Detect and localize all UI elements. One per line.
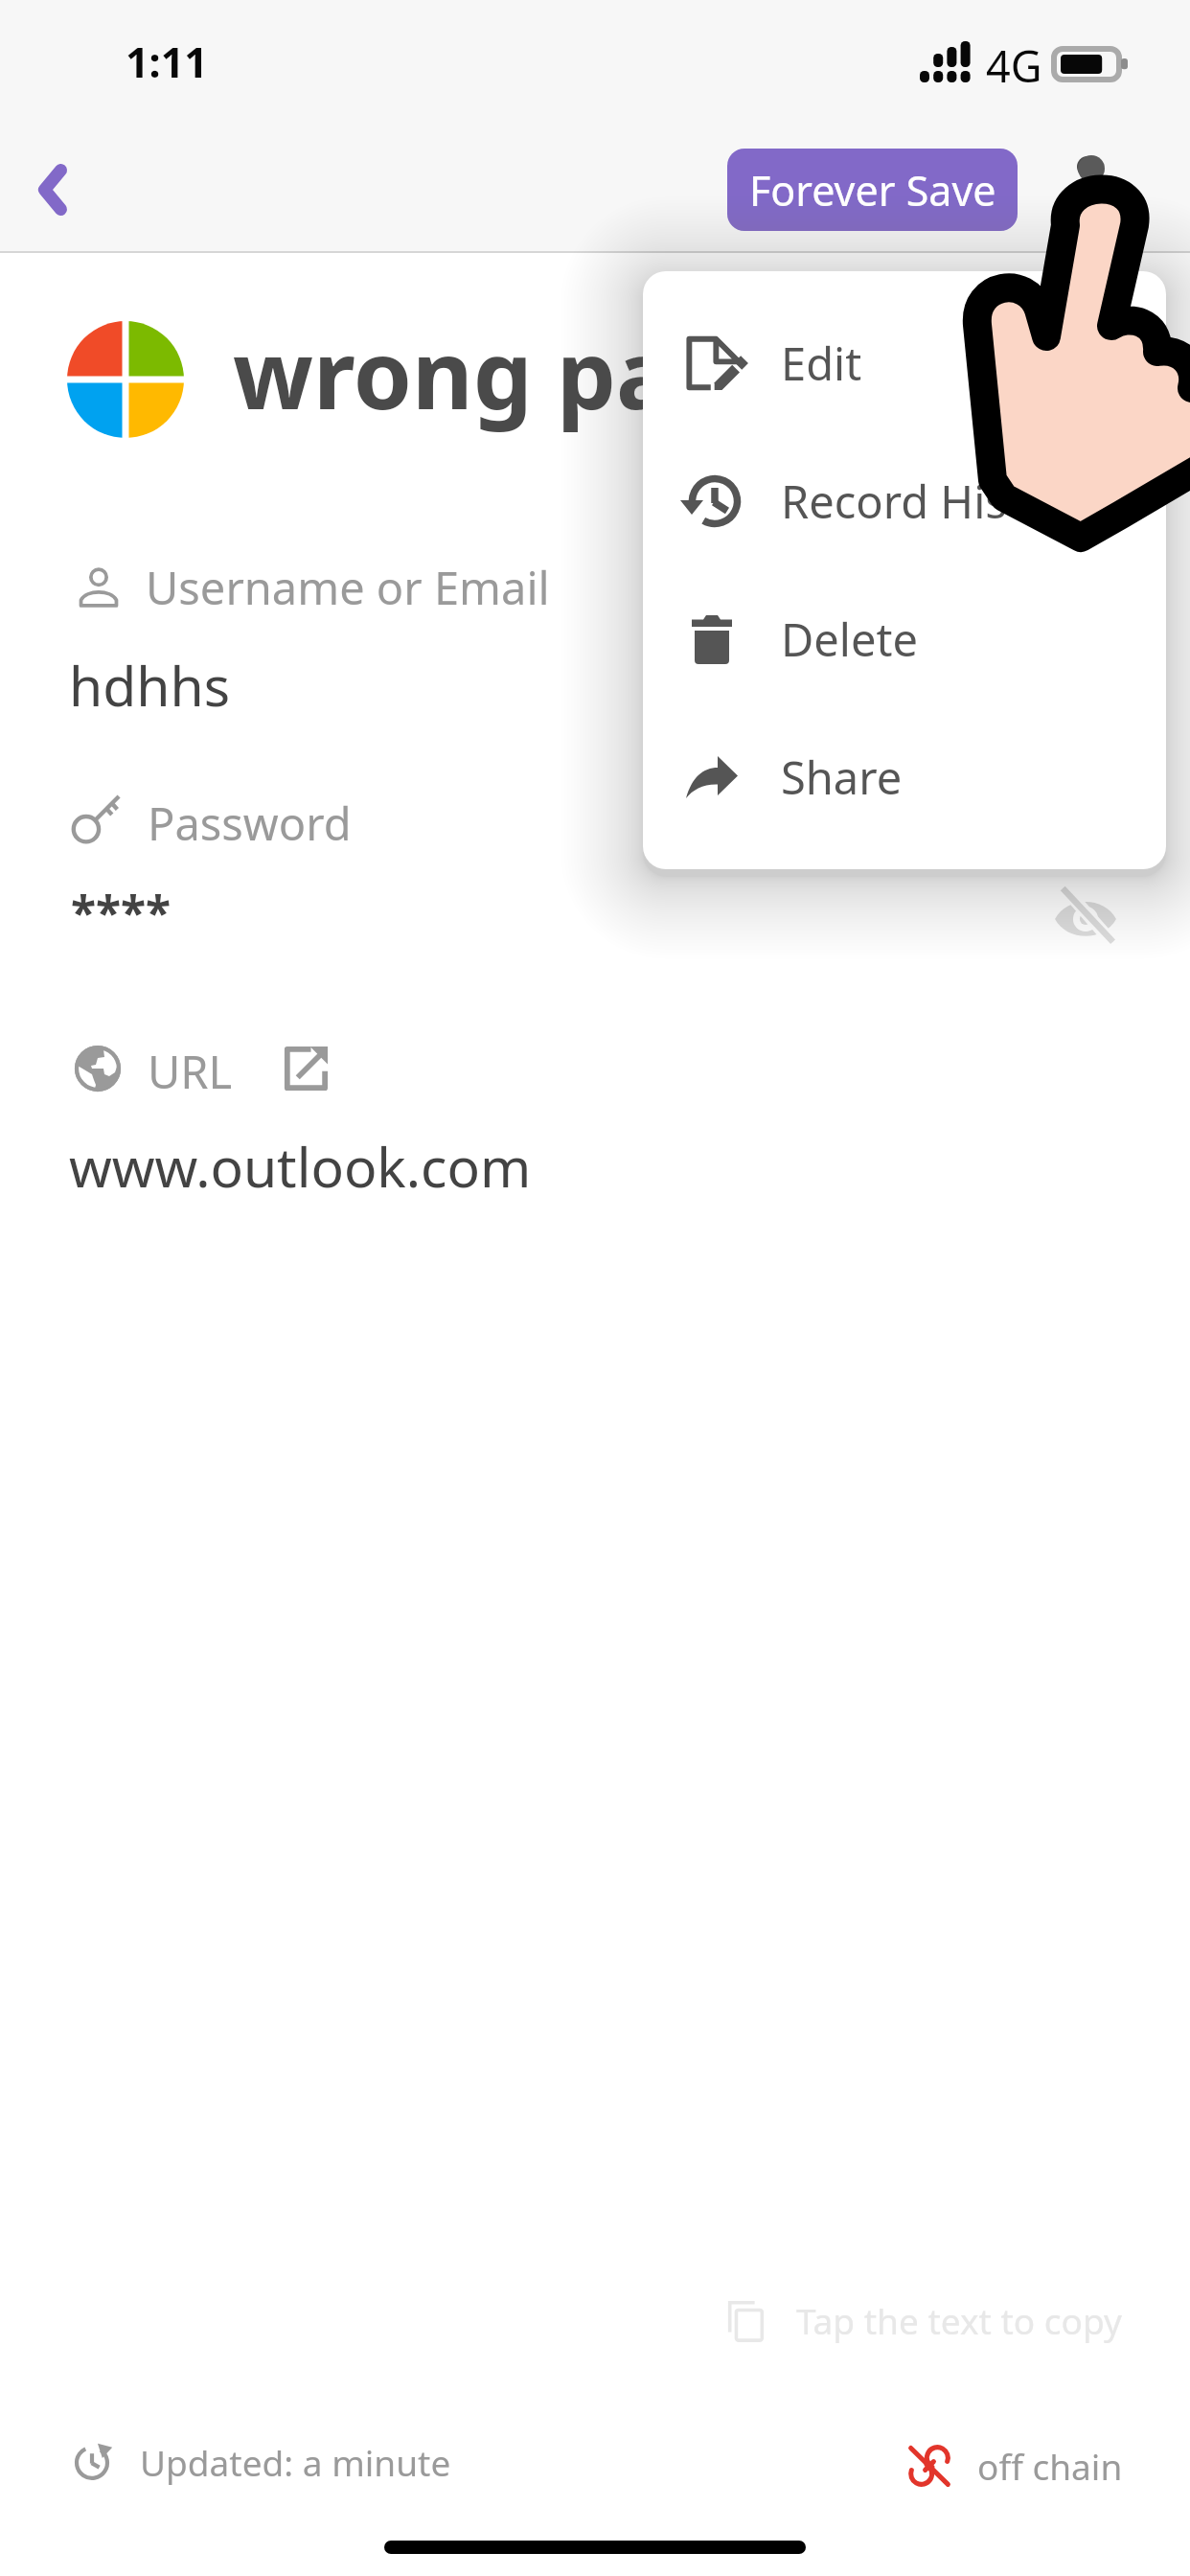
staticText: Updated: a minute xyxy=(140,2438,451,2486)
staticText: 4G xyxy=(986,36,1042,95)
button[interactable]: Edit xyxy=(643,294,1166,432)
button[interactable]: Back xyxy=(8,134,119,245)
button[interactable]: hdhhs xyxy=(69,648,231,723)
staticText: off chain xyxy=(977,2442,1123,2490)
staticText: Forever Save xyxy=(749,162,996,218)
button[interactable]: Show password xyxy=(1038,868,1133,964)
button[interactable]: www.outlook.com xyxy=(69,1129,532,1204)
button[interactable]: Delete xyxy=(643,570,1166,708)
staticText: Password xyxy=(148,793,352,854)
staticText: URL xyxy=(148,1041,233,1102)
staticText: wrong password record xyxy=(233,309,1190,436)
staticText: Record History xyxy=(781,471,1092,532)
button[interactable]: More options xyxy=(1046,149,1129,232)
staticText: Username or Email xyxy=(146,557,550,618)
button[interactable]: Forever Save xyxy=(727,149,1018,231)
staticText: Delete xyxy=(781,609,918,670)
staticText: 1:11 xyxy=(126,34,208,90)
staticText: Edit xyxy=(781,333,862,394)
staticText: Tap the text to copy xyxy=(796,2296,1122,2344)
button[interactable]: Open URL xyxy=(284,1046,328,1091)
button[interactable]: Updated: a minute xyxy=(75,2438,451,2486)
button[interactable]: **** xyxy=(71,881,172,943)
staticText: Share xyxy=(781,747,903,808)
button[interactable]: Share xyxy=(643,708,1166,846)
button[interactable]: Record History xyxy=(643,432,1166,570)
button[interactable]: off chain xyxy=(908,2442,1123,2490)
